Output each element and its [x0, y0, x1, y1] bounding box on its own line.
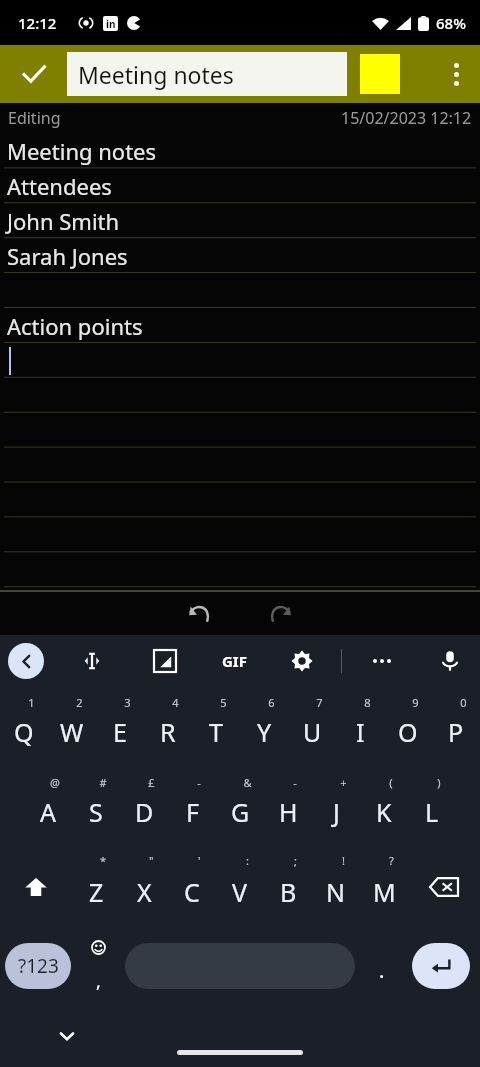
- staticText: +: [340, 775, 347, 790]
- staticText: Q: [14, 715, 34, 749]
- button[interactable]: .: [362, 938, 402, 994]
- staticText: Meeting notes: [7, 136, 157, 166]
- staticText: 3: [124, 695, 131, 710]
- button[interactable]: Enter: [412, 943, 470, 989]
- button[interactable]: &: [216, 767, 264, 847]
- button[interactable]: 7: [288, 687, 336, 767]
- button[interactable]: Space: [125, 943, 355, 989]
- staticText: V: [232, 875, 248, 909]
- button[interactable]: Emoji and comma: [78, 936, 118, 996]
- staticText: J: [333, 795, 340, 829]
- staticText: (: [389, 775, 393, 790]
- staticText: @: [50, 775, 60, 790]
- staticText: M: [373, 875, 396, 909]
- button[interactable]: ": [120, 847, 168, 927]
- staticText: ?123: [18, 953, 59, 979]
- staticText: G: [231, 795, 250, 829]
- staticText: -: [293, 775, 297, 790]
- button[interactable]: 4: [144, 687, 192, 767]
- staticText: Editing: [8, 107, 61, 129]
- staticText: Attendees: [7, 171, 112, 201]
- staticText: E: [113, 715, 127, 749]
- button[interactable]: 1: [0, 687, 48, 767]
- staticText: ?: [389, 853, 394, 868]
- button[interactable]: 3: [96, 687, 144, 767]
- button[interactable]: 0: [432, 687, 480, 767]
- button[interactable]: Text editing: [72, 641, 112, 681]
- staticText: 8: [364, 695, 371, 710]
- staticText: B: [280, 875, 297, 909]
- button[interactable]: ;: [264, 847, 312, 927]
- button[interactable]: 9: [384, 687, 432, 767]
- staticText: 5: [220, 695, 227, 710]
- staticText: .: [379, 957, 385, 984]
- staticText: D: [135, 795, 154, 829]
- staticText: R: [160, 715, 176, 749]
- staticText: C: [184, 875, 200, 909]
- staticText: K: [376, 795, 392, 829]
- button[interactable]: Meeting notes: [0, 133, 480, 591]
- staticText: Z: [89, 875, 104, 909]
- button[interactable]: Back: [8, 643, 44, 679]
- button[interactable]: -: [168, 767, 216, 847]
- button[interactable]: £: [120, 767, 168, 847]
- staticText: X: [137, 875, 152, 909]
- staticText: 2: [76, 695, 83, 710]
- button[interactable]: Settings: [282, 641, 322, 681]
- button[interactable]: ?123: [5, 943, 71, 989]
- staticText: 68%: [436, 13, 466, 33]
- button[interactable]: ?: [360, 847, 408, 927]
- button[interactable]: 2: [48, 687, 96, 767]
- button[interactable]: 8: [336, 687, 384, 767]
- staticText: F: [186, 795, 199, 829]
- button[interactable]: #: [72, 767, 120, 847]
- button[interactable]: @: [24, 767, 72, 847]
- staticText: &: [243, 775, 252, 790]
- button[interactable]: 5: [192, 687, 240, 767]
- button[interactable]: ): [408, 767, 456, 847]
- staticText: U: [303, 715, 322, 749]
- button[interactable]: GIF: [212, 639, 256, 683]
- button[interactable]: Sticker: [145, 641, 185, 681]
- button[interactable]: Backspace: [408, 847, 480, 927]
- button[interactable]: Hide keyboard: [48, 1017, 86, 1055]
- button[interactable]: (: [360, 767, 408, 847]
- button[interactable]: :: [216, 847, 264, 927]
- button[interactable]: *: [72, 847, 120, 927]
- staticText: !: [342, 853, 345, 868]
- staticText: 1: [28, 695, 35, 710]
- button[interactable]: !: [312, 847, 360, 927]
- staticText: N: [326, 875, 346, 909]
- staticText: P: [448, 715, 464, 749]
- button[interactable]: More options: [432, 45, 480, 103]
- staticText: 7: [316, 695, 323, 710]
- button[interactable]: Meeting notes: [67, 52, 347, 96]
- staticText: Y: [257, 715, 272, 749]
- button[interactable]: Shift: [0, 847, 72, 927]
- staticText: 12:12: [18, 13, 57, 33]
- staticText: Sarah Jones: [7, 241, 128, 271]
- staticText: L: [425, 795, 439, 829]
- button[interactable]: Voice input: [430, 641, 470, 681]
- staticText: John Smith: [7, 206, 120, 236]
- button[interactable]: 6: [240, 687, 288, 767]
- staticText: ": [149, 853, 154, 868]
- staticText: Action points: [7, 311, 143, 341]
- button[interactable]: Undo: [179, 593, 219, 633]
- button[interactable]: ': [168, 847, 216, 927]
- staticText: ,: [96, 969, 101, 994]
- staticText: H: [279, 795, 298, 829]
- button[interactable]: -: [264, 767, 312, 847]
- staticText: *: [100, 853, 107, 868]
- staticText: GIF: [222, 651, 247, 671]
- button[interactable]: +: [312, 767, 360, 847]
- button[interactable]: More: [360, 639, 404, 683]
- staticText: ': [198, 853, 201, 868]
- button[interactable]: Save note: [0, 45, 67, 103]
- staticText: £: [148, 775, 155, 790]
- staticText: in: [106, 17, 116, 31]
- staticText: ): [437, 775, 441, 790]
- staticText: 6: [268, 695, 275, 710]
- button[interactable]: Redo: [261, 593, 301, 633]
